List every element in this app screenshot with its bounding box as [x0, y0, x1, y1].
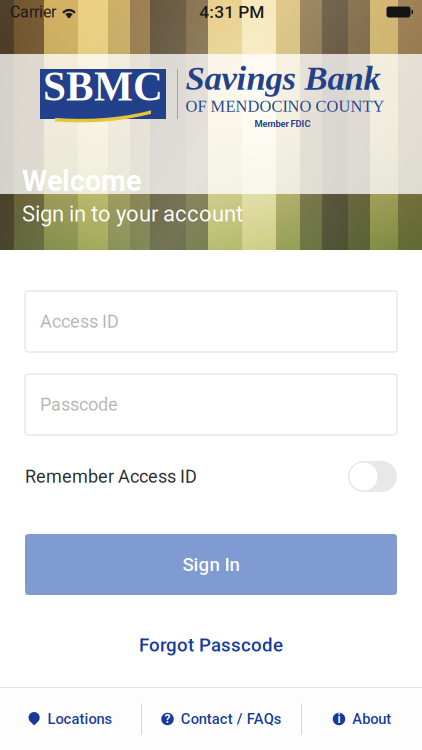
button[interactable]: ?: [142, 688, 301, 750]
button[interactable]: Forgot Passcode: [25, 632, 397, 658]
staticText: 4:31 PM: [199, 2, 264, 22]
staticText: Locations: [47, 710, 112, 728]
staticText: Sign in to your account: [22, 201, 243, 227]
staticText: i: [337, 712, 340, 726]
staticText: Member FDIC: [254, 118, 310, 129]
button[interactable]: Sign In: [25, 534, 397, 595]
staticText: SBMC: [43, 64, 163, 109]
staticText: Sign In: [182, 554, 239, 575]
button[interactable]: Remember Access ID: [348, 461, 397, 492]
staticText: Carrier: [10, 3, 56, 21]
button[interactable]: Locations: [0, 688, 141, 750]
staticText: Welcome: [22, 164, 141, 198]
staticText: OF MENDOCINO COUNTY: [185, 97, 384, 115]
staticText: Passcode: [40, 394, 118, 415]
staticText: Remember Access ID: [25, 466, 197, 487]
staticText: ?: [164, 712, 170, 726]
staticText: About: [352, 710, 391, 728]
staticText: Access ID: [40, 311, 119, 332]
staticText: Contact / FAQs: [181, 710, 282, 728]
staticText: Savings Bank: [185, 59, 380, 97]
button[interactable]: i: [302, 688, 422, 750]
staticText: Forgot Passcode: [139, 634, 283, 656]
